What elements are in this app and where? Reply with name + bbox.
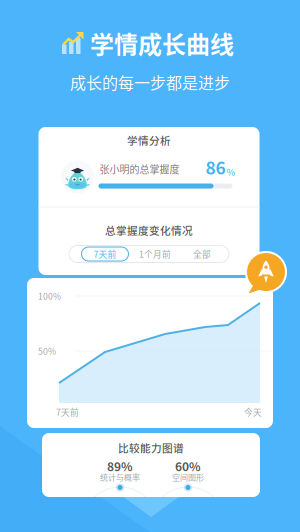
- button[interactable]: 1个月前: [130, 247, 180, 261]
- staticText: 空间图形: [172, 471, 204, 483]
- staticText: %: [226, 165, 235, 178]
- staticText: 60%: [175, 457, 201, 475]
- staticText: 学情分析: [127, 132, 171, 148]
- staticText: 7天前: [93, 248, 116, 260]
- staticText: 100%: [38, 290, 61, 302]
- staticText: 统计与概率: [100, 471, 140, 483]
- staticText: 全部: [193, 248, 211, 260]
- staticText: 7天前: [56, 406, 79, 418]
- button[interactable]: 全部: [179, 247, 224, 261]
- staticText: 成长的每一步都是进步: [70, 70, 230, 94]
- staticText: 学情成长曲线: [90, 26, 234, 60]
- staticText: 86: [205, 154, 225, 180]
- button[interactable]: 7天前: [81, 247, 128, 261]
- staticText: 张小明的总掌握度: [99, 162, 179, 176]
- staticText: 50%: [38, 345, 56, 357]
- staticText: 1个月前: [139, 248, 171, 260]
- staticText: 今天: [244, 406, 262, 418]
- button[interactable]: 学习助手: [244, 250, 292, 300]
- staticText: 比较能力图谱: [118, 440, 184, 455]
- staticText: 总掌握度变化情况: [105, 222, 193, 238]
- staticText: 89%: [107, 457, 133, 475]
